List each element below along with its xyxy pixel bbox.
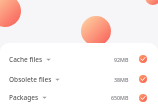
other: Selected <box>139 94 147 102</box>
button[interactable]: Packages <box>0 89 158 106</box>
staticText: 92MB <box>114 56 129 63</box>
staticText: 650MB <box>111 94 129 101</box>
other: Selected <box>139 75 147 83</box>
button[interactable]: Obsolete files <box>0 69 158 89</box>
other: Selected <box>139 55 147 63</box>
staticText: Packages <box>9 93 39 102</box>
button[interactable]: Cache files <box>0 49 158 69</box>
staticText: 38MB <box>114 76 129 83</box>
staticText: Obsolete files <box>9 75 52 84</box>
staticText: Cache files <box>9 55 43 64</box>
